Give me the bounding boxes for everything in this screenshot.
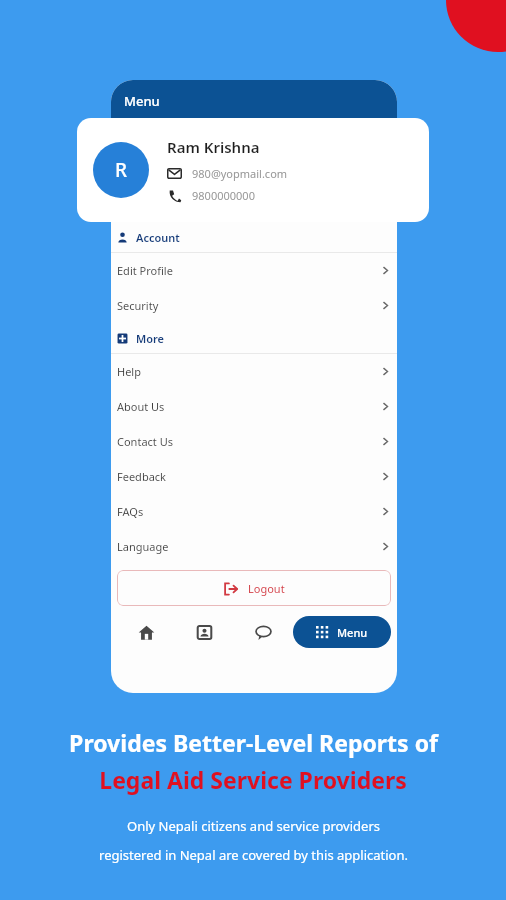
staticText: Legal Aid Service Providers xyxy=(99,764,407,795)
staticText: registered in Nepal are covered by this … xyxy=(99,846,408,864)
button[interactable]: R xyxy=(77,118,429,222)
staticText: Menu xyxy=(124,92,160,110)
staticText: FAQs xyxy=(117,504,380,519)
button[interactable]: Help xyxy=(111,354,397,389)
button[interactable]: Contact Us xyxy=(111,424,397,459)
button[interactable]: About Us xyxy=(111,389,397,424)
staticText: Contact Us xyxy=(117,434,380,449)
button[interactable]: Security xyxy=(111,288,397,323)
staticText: Logout xyxy=(248,581,285,596)
staticText: Help xyxy=(117,364,380,379)
staticText: R xyxy=(115,157,128,183)
button[interactable]: Feedback xyxy=(111,459,397,494)
staticText: Only Nepali citizens and service provide… xyxy=(127,817,380,835)
staticText: Provides Better-Level Reports of xyxy=(69,727,438,758)
staticText: Language xyxy=(117,539,380,554)
staticText: More xyxy=(136,331,164,346)
button[interactable]: Edit Profile xyxy=(111,253,397,288)
staticText: Ram Krishna xyxy=(167,137,260,157)
button[interactable]: Language xyxy=(111,529,397,564)
button[interactable]: Home xyxy=(117,612,175,652)
staticText: Feedback xyxy=(117,469,380,484)
button[interactable]: Messages xyxy=(234,612,293,652)
staticText: Account xyxy=(136,230,180,245)
staticText: 9800000000 xyxy=(192,188,255,203)
staticText: 980@yopmail.com xyxy=(192,166,288,181)
button[interactable]: Logout xyxy=(117,570,391,606)
staticText: Menu xyxy=(337,625,368,640)
button[interactable]: Menu xyxy=(293,616,391,648)
button[interactable]: FAQs xyxy=(111,494,397,529)
staticText: Security xyxy=(117,298,380,313)
staticText: Edit Profile xyxy=(117,263,380,278)
staticText: About Us xyxy=(117,399,380,414)
button[interactable]: More xyxy=(111,323,397,353)
button[interactable]: Reports xyxy=(175,612,234,652)
button[interactable]: Account xyxy=(111,222,397,252)
